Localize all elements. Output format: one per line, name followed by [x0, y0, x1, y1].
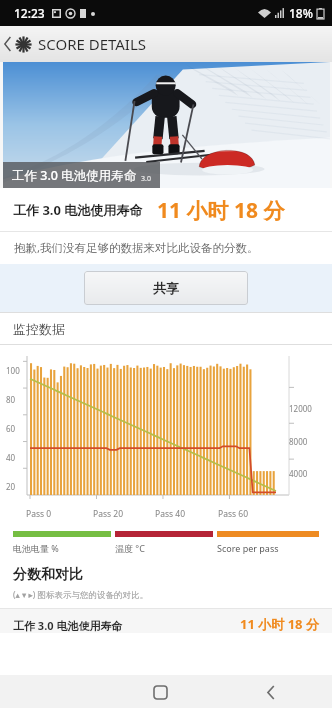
staticText: Pass 40 [155, 508, 185, 520]
staticText: 温度 °C [115, 542, 217, 554]
staticText: 4000 [289, 468, 308, 479]
staticText: 11 小时 18 分 [240, 615, 319, 633]
staticText: 电池电量 % [13, 542, 115, 554]
staticText: Pass 0 [26, 508, 52, 520]
staticText: 抱歉,我们没有足够的数据来对比此设备的分数。 [14, 240, 259, 256]
staticText: 监控数据 [13, 321, 65, 337]
staticText: 100 [6, 365, 20, 376]
staticText: 60 [6, 423, 16, 434]
button[interactable]: 共享 [84, 271, 248, 305]
staticText: Pass 60 [218, 508, 248, 520]
staticText: (▴ ▾ ▸) 图标表示与您的设备的对比。 [13, 589, 149, 601]
staticText: Score per pass [217, 542, 319, 554]
staticText: 12000 [289, 403, 312, 414]
button[interactable]: Home [147, 681, 173, 703]
staticText: 12:23 [14, 5, 45, 21]
staticText: Pass 20 [93, 508, 123, 520]
staticText: 工作 3.0 电池使用寿命 [13, 618, 123, 633]
staticText: 80 [6, 394, 16, 405]
staticText: 40 [6, 452, 16, 463]
staticText: 分数和对比 [13, 566, 83, 584]
staticText: 20 [6, 481, 16, 492]
staticText: 工作 3.0 电池使用寿命 [13, 201, 143, 219]
staticText: SCORE DETAILS [38, 34, 147, 54]
staticText: 共享 [153, 280, 179, 296]
staticText: 18% [289, 5, 313, 21]
staticText: 3.0 [141, 174, 151, 184]
other: Back [4, 37, 12, 51]
button[interactable]: Back [258, 681, 284, 703]
staticText: 11 小时 18 分 [157, 196, 285, 225]
staticText: 工作 3.0 电池使用寿命 [12, 167, 137, 184]
staticText: 8000 [289, 436, 308, 447]
button[interactable]: Back [0, 26, 332, 62]
